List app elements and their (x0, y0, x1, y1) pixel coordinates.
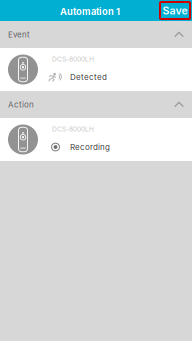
staticText: Action (8, 100, 34, 109)
button[interactable]: DCS-8000LH (0, 48, 192, 91)
button[interactable]: Save (160, 2, 190, 19)
staticText: Automation 1 (60, 6, 120, 17)
button[interactable]: Event (0, 21, 192, 48)
staticText: Event (8, 30, 30, 39)
staticText: Detected (70, 72, 107, 82)
staticText: DCS-8000LH (52, 55, 94, 63)
staticText: Recording (70, 142, 110, 152)
staticText: DCS-8000LH (52, 125, 94, 133)
staticText: Save (162, 4, 187, 17)
button[interactable]: DCS-8000LH (0, 118, 192, 161)
button[interactable]: Action (0, 91, 192, 118)
